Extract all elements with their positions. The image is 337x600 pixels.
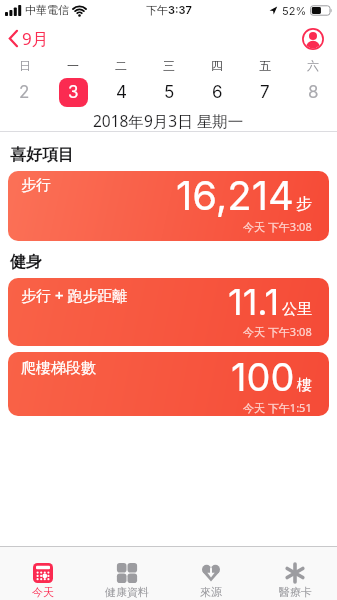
staticText: 5 (164, 82, 175, 103)
staticText: 今天 下午3:08 (243, 324, 312, 339)
staticText: 樓 (297, 376, 312, 395)
staticText: 2018年9月3日 星期一 (93, 110, 244, 131)
staticText: 11.1 (228, 280, 280, 324)
staticText: 下午3:37 (146, 3, 192, 17)
staticText: 六 (307, 58, 319, 73)
button[interactable]: 爬樓梯段數 (8, 352, 329, 416)
staticText: 52% (282, 4, 307, 17)
staticText: 公里 (282, 300, 312, 319)
staticText: 醫療卡 (279, 585, 312, 599)
staticText: 9月 (22, 27, 49, 50)
button[interactable]: 步行 + 跑步距離 (8, 278, 329, 346)
staticText: 健身 (10, 252, 42, 272)
button[interactable]: 4 (97, 74, 145, 110)
staticText: 四 (211, 58, 223, 73)
button[interactable]: 2 (0, 74, 49, 110)
staticText: 喜好項目 (10, 145, 74, 165)
staticText: 五 (259, 58, 271, 73)
button[interactable]: 醫療卡 (253, 547, 337, 600)
staticText: 3 (68, 82, 79, 103)
staticText: 2 (19, 82, 30, 103)
button[interactable]: 5 (145, 74, 193, 110)
staticText: 7 (260, 82, 270, 103)
button[interactable]: 7 (241, 74, 289, 110)
staticText: 16,214 (176, 171, 294, 219)
staticText: 中華電信 (25, 3, 69, 17)
staticText: 今天 (32, 585, 54, 599)
staticText: 健康資料 (105, 585, 149, 599)
button[interactable]: 3 (49, 74, 97, 110)
staticText: 爬樓梯段數 (21, 359, 96, 378)
staticText: 步 (296, 194, 312, 214)
staticText: 100 (231, 354, 295, 400)
staticText: 步行 + 跑步距離 (21, 285, 128, 305)
staticText: 步行 (21, 176, 51, 195)
button[interactable]: 今天 (0, 547, 85, 600)
staticText: 來源 (200, 585, 222, 599)
staticText: 4 (116, 82, 127, 103)
staticText: 今天 下午1:51 (243, 400, 312, 415)
staticText: 一 (67, 58, 79, 73)
button[interactable]: 9月 (8, 27, 49, 50)
button[interactable]: 8 (289, 74, 337, 110)
button[interactable] (302, 28, 324, 50)
staticText: 今天 下午3:08 (243, 219, 312, 234)
button[interactable]: 健康資料 (85, 547, 169, 600)
staticText: 8 (308, 82, 319, 103)
button[interactable]: 步行 (8, 171, 329, 241)
staticText: 三 (163, 58, 175, 73)
staticText: 二 (115, 58, 127, 73)
staticText: 日 (19, 58, 31, 73)
button[interactable]: 來源 (169, 547, 253, 600)
staticText: 6 (212, 82, 223, 103)
button[interactable]: 6 (193, 74, 241, 110)
